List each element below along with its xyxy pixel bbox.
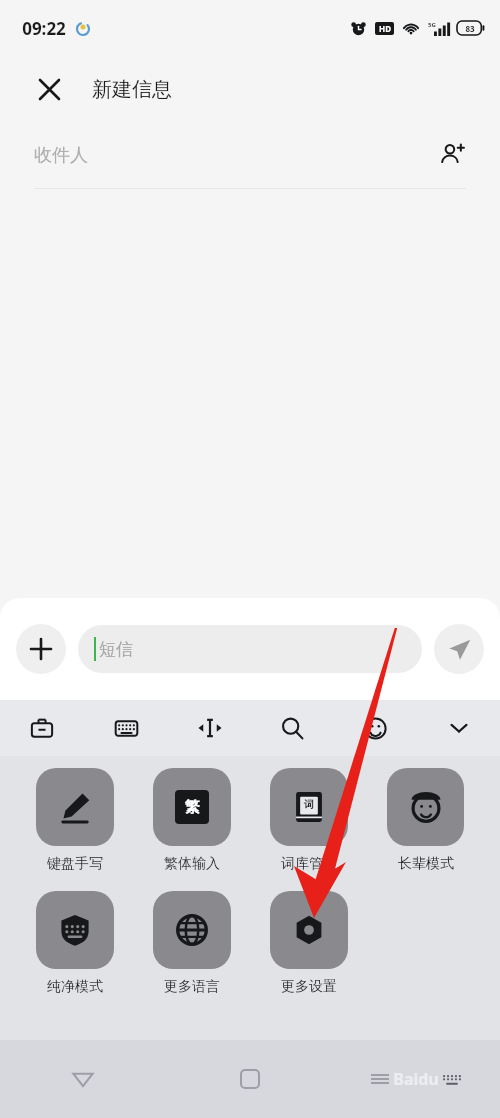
staticText: 词库管理 bbox=[281, 855, 337, 873]
button[interactable]: 纯净模式 bbox=[36, 891, 114, 996]
staticText: 纯净模式 bbox=[47, 978, 103, 996]
button[interactable]: 繁 bbox=[153, 768, 231, 873]
button[interactable]: Keyboard tool bbox=[251, 700, 334, 756]
button[interactable]: Keyboard tool bbox=[417, 700, 500, 756]
staticText: 短信 bbox=[99, 639, 133, 660]
button[interactable]: Keyboard tool bbox=[84, 700, 168, 756]
staticText: 繁 bbox=[185, 798, 200, 817]
button[interactable]: Back bbox=[0, 1040, 166, 1118]
staticText: HD bbox=[379, 23, 391, 34]
button[interactable]: Keyboard tool bbox=[168, 700, 251, 756]
button[interactable]: 键盘手写 bbox=[36, 768, 114, 873]
button[interactable]: Home bbox=[166, 1040, 333, 1118]
staticText: Baidu bbox=[393, 1068, 439, 1090]
button[interactable]: 短信 bbox=[78, 625, 422, 673]
staticText: 5G bbox=[428, 21, 436, 29]
staticText: 新建信息 bbox=[92, 77, 172, 102]
button[interactable]: Add contact bbox=[432, 135, 472, 175]
staticText: 词 bbox=[304, 798, 314, 811]
button[interactable]: 长辈模式 bbox=[387, 768, 464, 873]
staticText: 更多设置 bbox=[281, 978, 337, 996]
button[interactable]: Add attachment bbox=[16, 624, 66, 674]
button[interactable]: 更多语言 bbox=[153, 891, 231, 996]
staticText: 收件人 bbox=[34, 144, 88, 167]
staticText: 09:22 bbox=[22, 17, 66, 40]
button[interactable]: Keyboard tool bbox=[0, 700, 84, 756]
button[interactable]: Recents and keyboard bbox=[333, 1040, 500, 1118]
button[interactable]: Send bbox=[434, 624, 484, 674]
staticText: 繁体输入 bbox=[164, 855, 220, 873]
staticText: 键盘手写 bbox=[47, 855, 103, 873]
staticText: 更多语言 bbox=[164, 978, 220, 996]
button[interactable]: Close bbox=[30, 70, 68, 108]
button[interactable]: 更多设置 bbox=[270, 891, 348, 996]
staticText: 83 bbox=[465, 23, 475, 34]
button[interactable]: Keyboard tool bbox=[334, 700, 417, 756]
staticText: 长辈模式 bbox=[398, 855, 454, 873]
button[interactable]: 词 bbox=[270, 768, 348, 873]
